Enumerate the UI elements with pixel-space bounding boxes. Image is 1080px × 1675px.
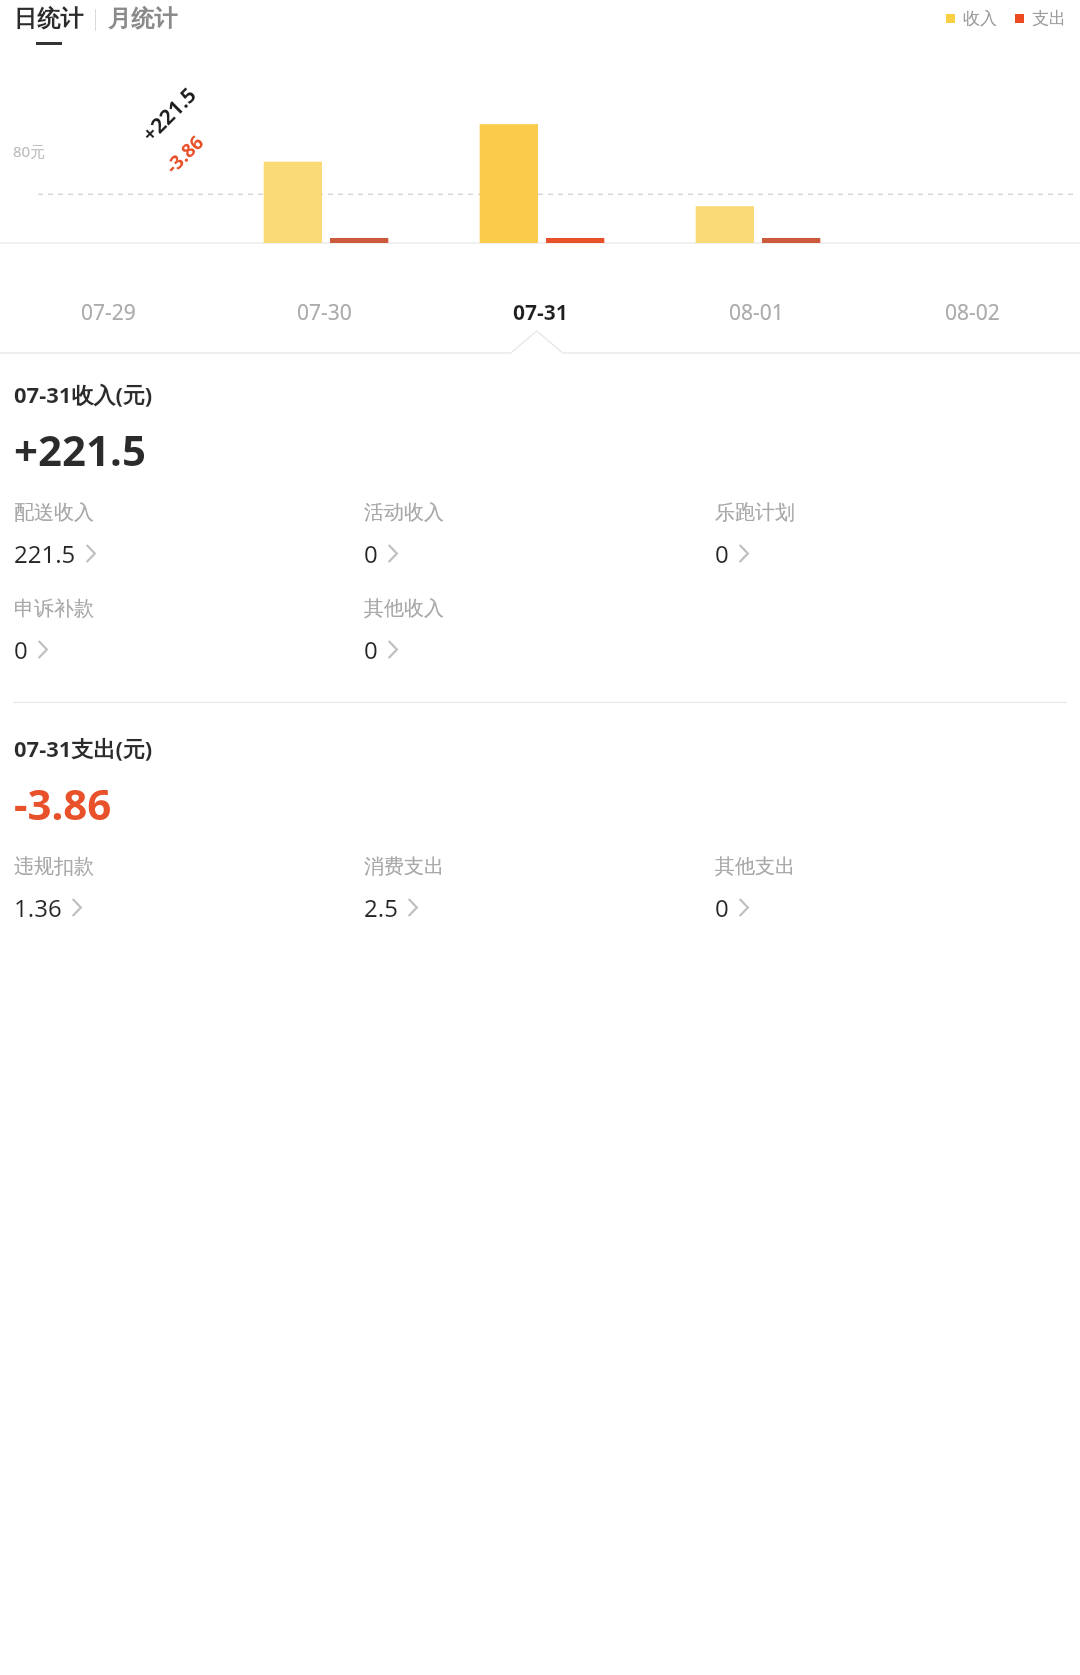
button[interactable]: 违规扣款 <box>14 854 94 924</box>
staticText: -3.86 <box>14 775 112 832</box>
staticText: 消费支出 <box>364 854 444 879</box>
staticText: 0 <box>364 633 378 666</box>
staticText: 0 <box>715 891 729 924</box>
staticText: 其他支出 <box>715 854 795 879</box>
staticText: 申诉补款 <box>14 596 94 621</box>
staticText: 07-29 <box>81 298 136 327</box>
button[interactable]: 活动收入 <box>364 500 444 570</box>
other: 查看详情 <box>738 545 749 562</box>
other: 查看详情 <box>738 899 749 916</box>
staticText: 其他收入 <box>364 596 444 621</box>
other: 查看详情 <box>71 899 82 916</box>
button[interactable]: 07-31 <box>432 298 648 327</box>
staticText: 活动收入 <box>364 500 444 525</box>
staticText: 0 <box>364 537 378 570</box>
staticText: 支出 <box>1032 8 1066 29</box>
button[interactable]: 消费支出 <box>364 854 444 924</box>
staticText: 违规扣款 <box>14 854 94 879</box>
staticText: 07-31支出(元) <box>14 733 153 763</box>
staticText: 08-02 <box>945 298 1000 327</box>
button[interactable]: 月统计 <box>108 4 177 33</box>
other: 查看详情 <box>387 545 398 562</box>
staticText: 0 <box>715 537 729 570</box>
staticText: +221.5 <box>14 421 146 478</box>
other: 查看详情 <box>37 641 48 658</box>
button[interactable]: 配送收入 <box>14 500 96 570</box>
button[interactable]: 其他支出 <box>715 854 795 924</box>
staticText: 221.5 <box>14 537 76 570</box>
staticText: 配送收入 <box>14 500 94 525</box>
staticText: +221.5 <box>135 81 203 148</box>
button[interactable]: 08-01 <box>648 298 864 327</box>
staticText: 0 <box>14 633 28 666</box>
other: 查看详情 <box>387 641 398 658</box>
staticText: 1.36 <box>14 891 62 924</box>
staticText: 80元 <box>13 141 46 161</box>
staticText: 07-31收入(元) <box>14 379 153 409</box>
staticText: 08-01 <box>729 298 784 327</box>
button[interactable]: 其他收入 <box>364 596 444 666</box>
button[interactable]: 07-30 <box>216 298 432 327</box>
other: 查看详情 <box>85 545 96 562</box>
staticText: 日统计 <box>14 4 83 33</box>
staticText: 07-30 <box>297 298 352 327</box>
other: 查看详情 <box>407 899 418 916</box>
button[interactable]: 07-29 <box>0 298 216 327</box>
staticText: 2.5 <box>364 891 398 924</box>
staticText: 收入 <box>963 8 997 29</box>
staticText: -3.86 <box>159 129 210 179</box>
staticText: 乐跑计划 <box>715 500 795 525</box>
button[interactable]: 08-02 <box>864 298 1080 327</box>
button[interactable]: 日统计 <box>14 4 83 45</box>
button[interactable]: 申诉补款 <box>14 596 94 666</box>
staticText: 07-31 <box>513 298 568 327</box>
button[interactable]: 乐跑计划 <box>715 500 795 570</box>
